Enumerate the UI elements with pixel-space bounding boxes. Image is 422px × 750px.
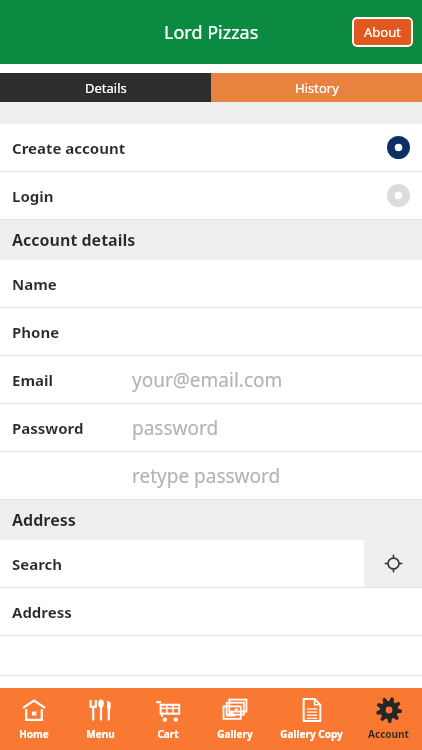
staticText: Details xyxy=(85,79,127,97)
button[interactable]: Search xyxy=(0,540,422,588)
button[interactable]: Cart xyxy=(134,688,201,750)
staticText: Home xyxy=(19,727,49,741)
button[interactable]: Login xyxy=(0,172,422,220)
staticText: Gallery xyxy=(217,727,253,741)
button[interactable]: Email xyxy=(0,356,422,404)
staticText: Menu xyxy=(86,727,115,741)
staticText: password xyxy=(132,415,219,441)
staticText: Lord Pizzas xyxy=(164,20,259,45)
button[interactable]: Details xyxy=(0,73,211,102)
staticText: Phone xyxy=(12,322,60,342)
staticText: Email xyxy=(12,370,53,390)
button[interactable]: History xyxy=(211,73,422,102)
staticText: Gallery Copy xyxy=(280,727,343,741)
button[interactable]: Address xyxy=(0,588,422,636)
staticText: Create account xyxy=(12,138,126,158)
button[interactable]: Home xyxy=(0,688,67,750)
staticText: retype password xyxy=(132,463,281,489)
button[interactable]: Password xyxy=(0,404,422,452)
staticText: Address xyxy=(12,509,76,531)
staticText: your@email.com xyxy=(132,367,283,393)
button[interactable]: retype password xyxy=(0,452,422,500)
button[interactable]: Name xyxy=(0,260,422,308)
staticText: Account details xyxy=(12,229,136,251)
staticText: Login xyxy=(12,186,54,206)
staticText: Address xyxy=(12,602,72,622)
button[interactable]: About xyxy=(352,17,413,47)
staticText: History xyxy=(295,79,339,97)
staticText: Name xyxy=(12,274,57,294)
button[interactable]: Menu xyxy=(67,688,134,750)
button[interactable]: Account xyxy=(355,688,422,750)
staticText: Search xyxy=(12,554,63,574)
staticText: Password xyxy=(12,418,84,438)
button[interactable]: Create account xyxy=(0,124,422,172)
button[interactable]: Phone xyxy=(0,308,422,356)
button[interactable]: Use current location xyxy=(364,540,422,587)
staticText: Cart xyxy=(157,727,179,741)
button[interactable]: Gallery Copy xyxy=(268,688,355,750)
staticText: Account xyxy=(368,727,409,741)
button[interactable]: Gallery xyxy=(201,688,268,750)
staticText: About xyxy=(364,23,401,41)
